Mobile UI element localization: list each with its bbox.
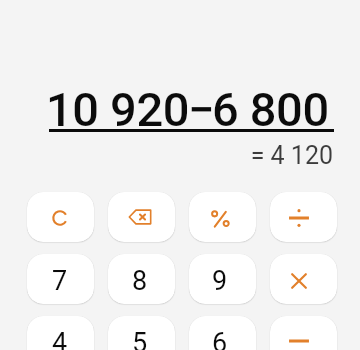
- staticText: 4: [52, 327, 68, 350]
- staticText: 8: [132, 265, 148, 297]
- button[interactable]: Percent: [189, 192, 256, 242]
- button[interactable]: 4: [27, 316, 94, 350]
- button[interactable]: Minus: [270, 316, 337, 350]
- staticText: 6 800: [212, 82, 329, 137]
- button[interactable]: Backspace: [108, 192, 175, 242]
- button[interactable]: 5: [108, 316, 175, 350]
- button[interactable]: Multiply: [270, 254, 337, 304]
- staticText: = 4 120: [250, 141, 333, 170]
- staticText: 9: [212, 265, 228, 297]
- staticText: 10 920: [46, 82, 190, 137]
- button[interactable]: 6: [189, 316, 256, 350]
- staticText: 6: [212, 327, 228, 350]
- staticText: 5: [132, 327, 148, 350]
- button[interactable]: Clear: [27, 192, 94, 242]
- button[interactable]: 9: [189, 254, 256, 304]
- button[interactable]: 8: [108, 254, 175, 304]
- button[interactable]: Divide: [270, 192, 337, 242]
- staticText: −: [188, 82, 215, 137]
- staticText: 7: [52, 265, 68, 297]
- button[interactable]: 7: [27, 254, 94, 304]
